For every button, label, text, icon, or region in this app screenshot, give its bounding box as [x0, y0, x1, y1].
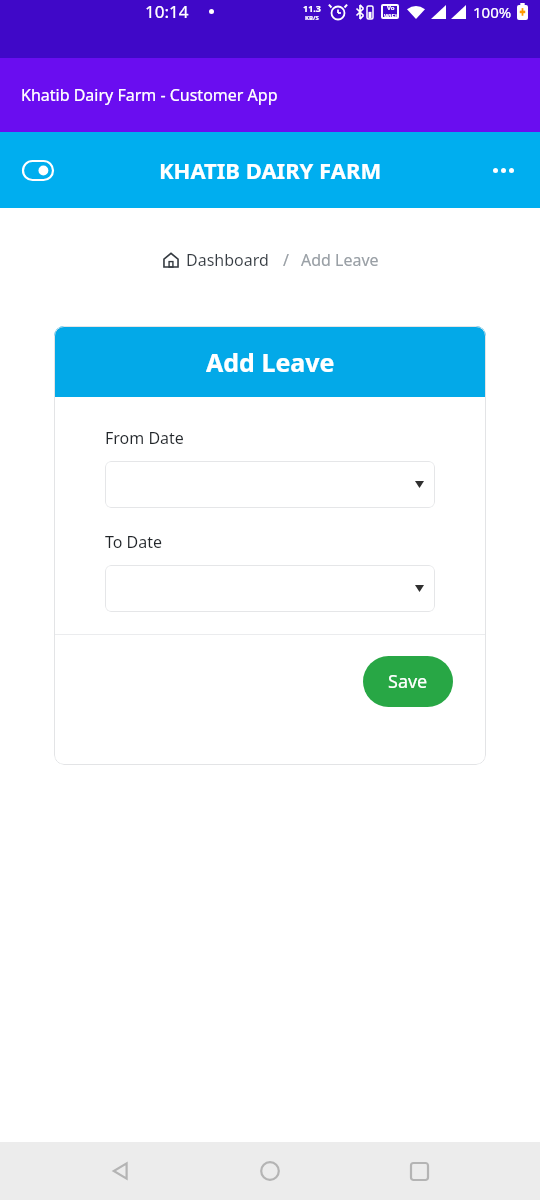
staticText: Dashboard: [186, 249, 269, 271]
staticText: 10:14: [145, 0, 189, 23]
staticText: Save: [388, 669, 428, 694]
staticText: From Date: [105, 427, 184, 449]
button[interactable]: More options: [478, 145, 528, 195]
staticText: Vo: [387, 4, 395, 12]
button[interactable]: [105, 565, 435, 612]
staticText: 100%: [473, 2, 512, 22]
staticText: Add Leave: [301, 249, 379, 271]
staticText: KHATIB DAIRY FARM: [159, 155, 382, 185]
button[interactable]: [105, 461, 435, 508]
staticText: KB/S: [305, 14, 319, 22]
staticText: Add Leave: [206, 345, 335, 379]
button[interactable]: Dashboard: [161, 246, 271, 274]
button[interactable]: Back: [93, 1143, 149, 1199]
button[interactable]: Toggle navigation menu: [12, 144, 64, 196]
button[interactable]: Recent apps: [391, 1143, 447, 1199]
staticText: 11.3: [303, 2, 321, 14]
staticText: Khatib Dairy Farm - Customer App: [21, 84, 278, 106]
staticText: /: [283, 249, 289, 271]
staticText: To Date: [105, 531, 163, 553]
staticText: WiFi: [384, 12, 397, 19]
button[interactable]: Save: [363, 656, 453, 707]
button[interactable]: Home: [242, 1143, 298, 1199]
